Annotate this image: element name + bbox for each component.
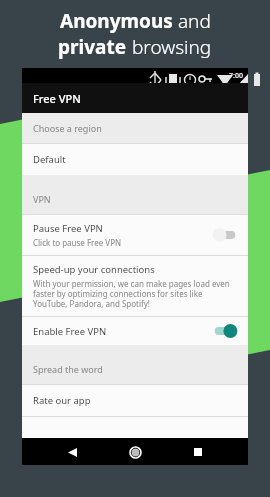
other: Toggle on (211, 324, 239, 338)
staticText: browsing (127, 34, 212, 60)
staticText: Default (33, 153, 66, 166)
staticText: private (58, 34, 127, 60)
staticText: Enable Free VPN (33, 325, 107, 338)
staticText: Anonymous (60, 8, 173, 34)
button[interactable]: Back (59, 439, 85, 465)
staticText: Pause Free VPN (33, 222, 103, 235)
staticText: 7:00 (229, 71, 243, 81)
button[interactable]: VPN (22, 184, 248, 214)
button[interactable]: Choose a region (22, 113, 248, 143)
button[interactable]: Rate our app (22, 385, 248, 416)
button[interactable]: Default (22, 144, 248, 175)
button[interactable]: Home (122, 439, 148, 465)
staticText: Rate our app (33, 394, 91, 407)
button[interactable]: Pause Free VPN (22, 215, 248, 255)
staticText: Free VPN (33, 91, 81, 106)
staticText: Choose a region (33, 122, 102, 134)
button[interactable]: Speed-up your connections (22, 256, 248, 316)
button[interactable]: Recents (185, 439, 211, 465)
button[interactable]: Enable Free VPN (22, 317, 248, 345)
staticText: Spread the word (33, 363, 103, 375)
button[interactable]: Spread the word (22, 354, 248, 384)
staticText: Speed-up your connections (33, 263, 155, 276)
staticText: and (173, 8, 211, 34)
staticText: Click to pause Free VPN (33, 237, 122, 248)
staticText: With your permission, we can make pages … (33, 278, 237, 309)
other: Toggle off (211, 228, 239, 242)
staticText: VPN (33, 193, 51, 205)
